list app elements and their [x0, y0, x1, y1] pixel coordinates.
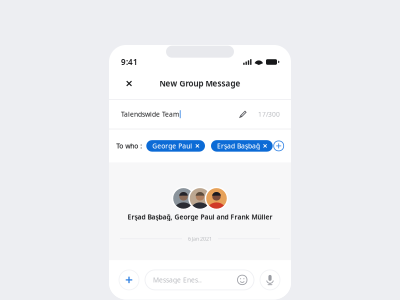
button[interactable]: George Paul [146, 140, 205, 152]
staticText: Talendswide Team [121, 110, 179, 119]
staticText: George Paul [152, 141, 192, 150]
staticText: New Group Message [159, 78, 240, 89]
staticText: 6 Jan 2021 [188, 235, 212, 242]
staticText: Erşad Başbağ, George Paul and Frank Müll… [127, 212, 272, 221]
button[interactable]: Message Enes.. [145, 270, 254, 290]
button[interactable]: Add recipient [273, 140, 285, 152]
button[interactable]: Edit group name [237, 108, 249, 120]
staticText: Erşad Başbağ [217, 141, 260, 150]
button[interactable]: Add attachment [119, 270, 139, 290]
staticText: To who : [116, 141, 142, 150]
staticText: Message Enes.. [153, 275, 202, 284]
button[interactable]: Close [121, 75, 137, 92]
button[interactable]: Erşad Başbağ [211, 140, 273, 152]
button[interactable]: Record voice message [260, 270, 280, 290]
staticText: 17/300 [258, 110, 280, 119]
staticText: 9:41 [121, 57, 138, 67]
